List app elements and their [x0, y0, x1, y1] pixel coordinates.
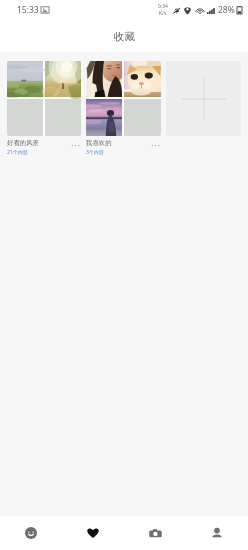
staticText: 我喜欢的 [86, 139, 112, 147]
staticText: 21个内容 [7, 149, 28, 156]
button[interactable]: Moments [0, 516, 62, 550]
button[interactable]: More options [69, 139, 81, 151]
button[interactable]: Camera [124, 516, 186, 550]
staticText: 28% [218, 4, 235, 16]
button[interactable]: Favorites [62, 516, 124, 550]
button[interactable]: 好看的风景 [7, 61, 81, 156]
staticText: 3个内容 [86, 149, 104, 156]
staticText: 15:33 [17, 4, 39, 16]
button[interactable]: 我喜欢的 [86, 61, 161, 156]
staticText: 0.34 [158, 3, 168, 10]
button[interactable]: Profile [186, 516, 248, 550]
staticText: 收藏 [114, 30, 135, 43]
staticText: K/s [159, 10, 167, 17]
button[interactable]: More options [149, 139, 161, 151]
staticText: 好看的风景 [7, 139, 39, 147]
